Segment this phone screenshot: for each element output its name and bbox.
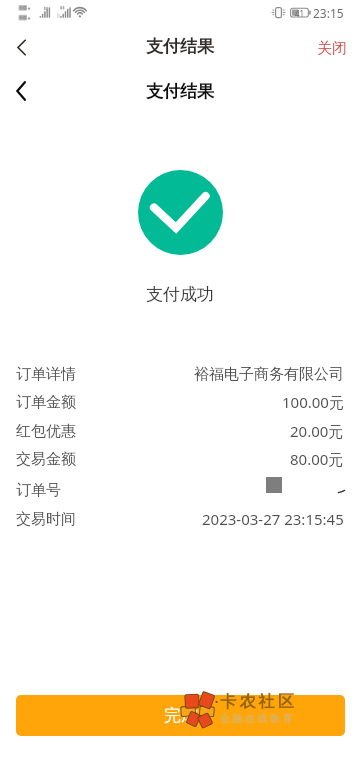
staticText: 100.00元 [282,392,344,412]
staticText: 41 [295,8,305,19]
staticText: 红包优惠 [16,422,76,441]
staticText: 完成 [164,705,198,726]
staticText: 关闭 [317,39,347,58]
staticText: 交易时间 [16,510,76,529]
staticText: 20.00元 [290,421,344,441]
button[interactable]: Back [0,68,42,112]
staticText: 2023-03-27 23:15:45 [202,509,344,529]
staticText: 订单号 [16,481,61,500]
staticText: 23:15 [313,5,344,21]
staticText: 卡农社区 [220,692,298,712]
button[interactable]: 完成 [16,695,345,736]
button[interactable]: 关闭 [303,26,360,66]
staticText: 订单金额 [16,393,76,412]
staticText: 裕福电子商务有限公司 [194,365,344,384]
button[interactable]: Back [0,26,42,66]
staticText: 交易金额 [16,450,76,469]
staticText: 支付结果 [146,81,214,102]
staticText: 支付结果 [146,36,214,57]
staticText: 支付成功 [0,284,360,305]
staticText: 金融在线教育 [220,713,295,725]
staticText: 订单详情 [16,365,76,384]
staticText: 80.00元 [290,449,344,469]
